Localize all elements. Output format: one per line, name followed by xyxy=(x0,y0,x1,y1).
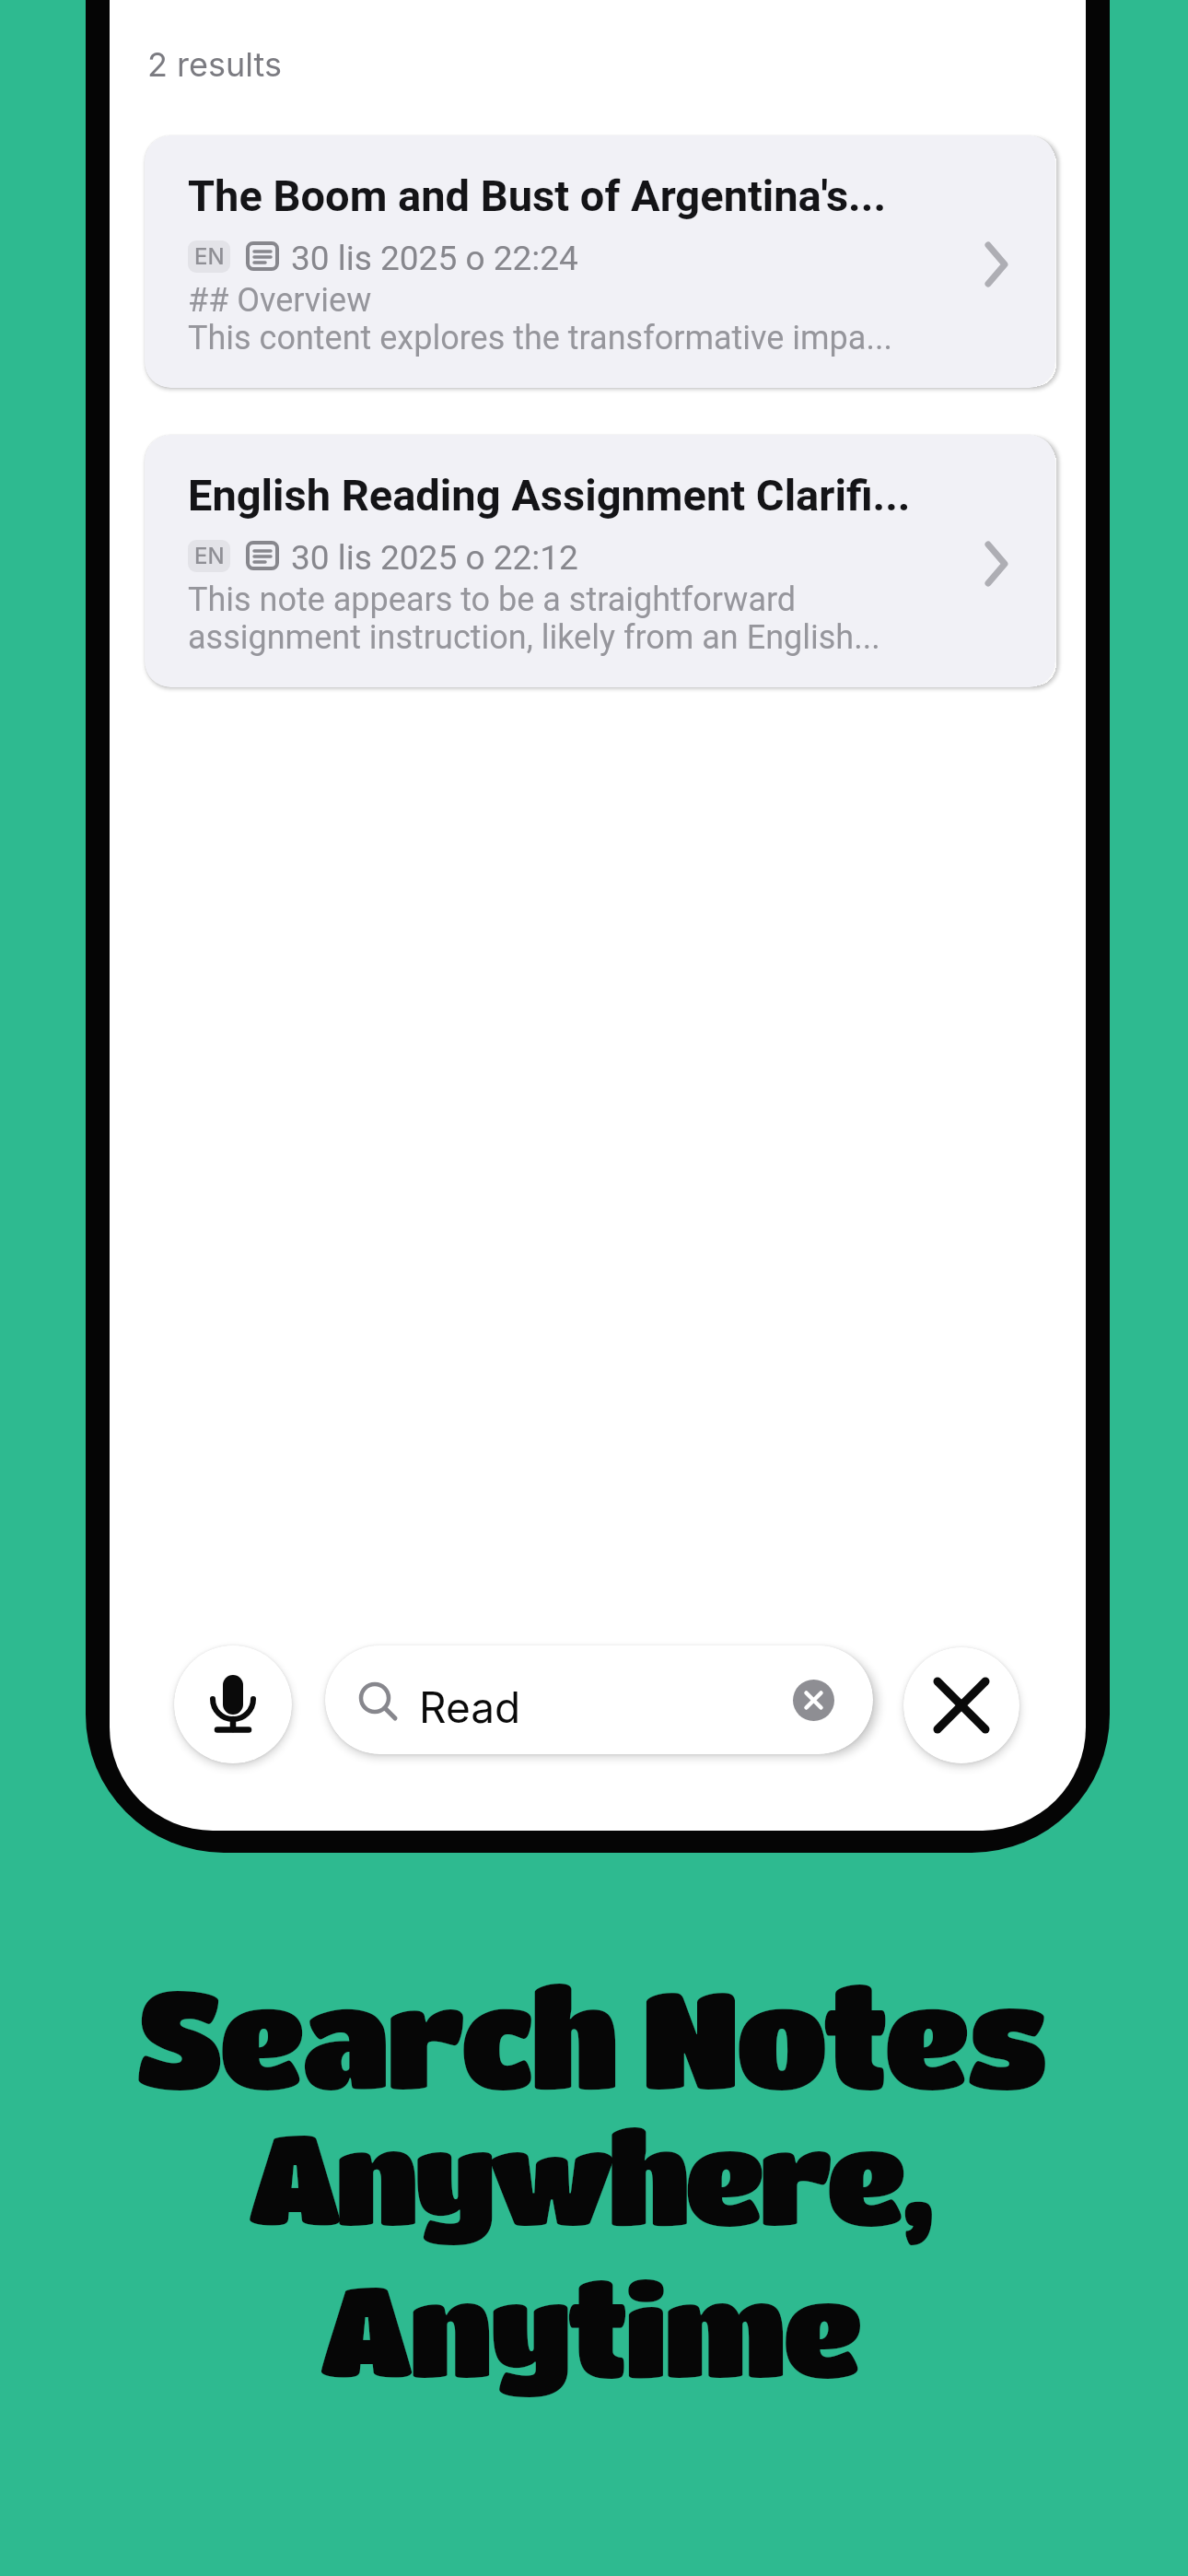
button[interactable]: The Boom and Bust of Argentina's... xyxy=(145,135,1055,388)
staticText: English Reading Assignment Clarifi... xyxy=(188,470,911,521)
staticText: EN xyxy=(194,543,225,569)
button[interactable] xyxy=(793,1680,834,1721)
staticText: This note appears to be a straightforwar… xyxy=(188,580,880,657)
staticText: EN xyxy=(194,243,225,270)
button[interactable] xyxy=(903,1647,1019,1763)
button[interactable]: Read xyxy=(325,1645,873,1754)
staticText: The Boom and Bust of Argentina's... xyxy=(188,170,887,221)
staticText: Anytime xyxy=(0,2255,1183,2400)
staticText: ## Overview This content explores the tr… xyxy=(188,281,892,357)
staticText: Search Notes xyxy=(0,1958,1183,2113)
staticText: 2 results xyxy=(147,44,282,85)
button[interactable] xyxy=(174,1645,292,1763)
staticText: 30 lis 2025 o 22:12 xyxy=(291,538,578,573)
staticText: Read xyxy=(419,1681,521,1733)
staticText: 30 lis 2025 o 22:24 xyxy=(291,239,578,274)
button[interactable]: English Reading Assignment Clarifi... xyxy=(145,435,1055,687)
staticText: Anywhere, xyxy=(0,2103,1183,2248)
